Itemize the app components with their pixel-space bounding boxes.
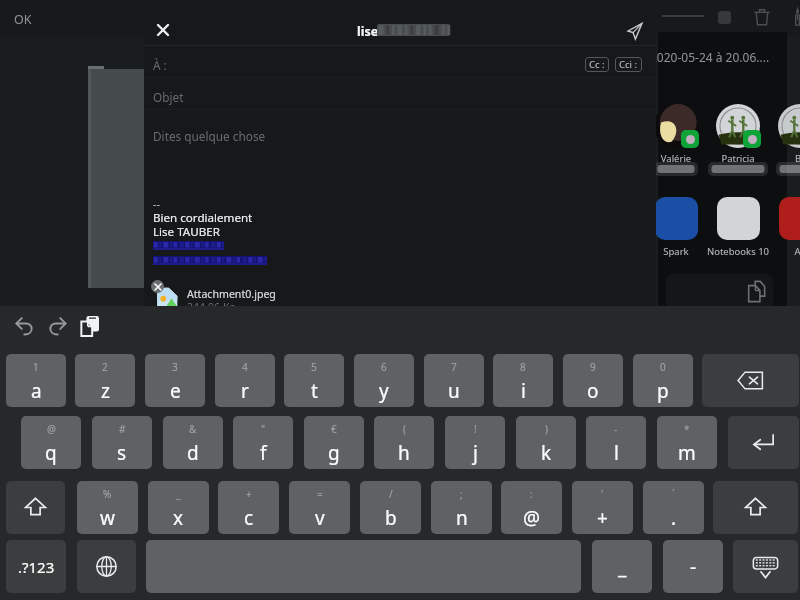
staticText: - [690, 554, 697, 580]
button[interactable]: " [233, 416, 293, 469]
button[interactable]: RETURN [728, 416, 799, 469]
button[interactable]: 8 [493, 354, 553, 407]
button[interactable]: 0 [633, 354, 693, 407]
button[interactable]: & [163, 416, 223, 469]
staticText: : [530, 487, 533, 501]
staticText: Cci : [619, 58, 638, 71]
button[interactable]: 3 [145, 354, 205, 407]
staticText: 2 [102, 360, 108, 374]
staticText: .?123 [18, 557, 55, 577]
button[interactable]: ( [374, 416, 434, 469]
staticText: v [315, 505, 325, 531]
staticText: d [187, 440, 199, 466]
staticText: s [117, 440, 127, 466]
staticText: 1 [33, 360, 39, 374]
button[interactable]: Undo [9, 310, 41, 342]
button[interactable]: _ [148, 481, 209, 534]
staticText: t [311, 378, 318, 404]
button[interactable]: @ [21, 416, 81, 469]
button[interactable]: ! [445, 416, 505, 469]
button[interactable]: - [586, 416, 646, 469]
button[interactable]: Attachment0.jpeg [149, 276, 339, 306]
button[interactable]: Copy [666, 274, 773, 306]
button[interactable]: 1 [6, 354, 66, 407]
button[interactable]: ' [572, 481, 633, 534]
staticText: b [385, 505, 397, 531]
button[interactable]: Objet [144, 78, 656, 109]
staticText: + [246, 487, 252, 501]
staticText: Br [770, 152, 800, 165]
staticText: e [170, 378, 181, 404]
staticText: 3 [172, 360, 178, 374]
button[interactable]: Cci : [619, 57, 638, 72]
staticText: - [614, 422, 618, 436]
button[interactable]: Redo [41, 310, 73, 342]
staticText: Dites quelque chose [153, 128, 266, 144]
button[interactable]: ) [516, 416, 576, 469]
button[interactable]: ´ [643, 481, 704, 534]
staticText: OK [14, 11, 32, 28]
button[interactable]: 7 [424, 354, 484, 407]
staticText: Attachment0.jpeg [187, 287, 276, 301]
button[interactable]: 9 [563, 354, 623, 407]
staticText: 2020-05-24 à 20.06.... [650, 49, 770, 65]
staticText: i [521, 378, 526, 404]
button[interactable]: / [360, 481, 421, 534]
button[interactable]: 4 [215, 354, 275, 407]
staticText: ´ [672, 487, 675, 501]
staticText: z [101, 378, 110, 404]
staticText: Lise TAUBER [153, 224, 220, 240]
staticText: c [244, 505, 254, 531]
staticText: ) [545, 422, 548, 436]
staticText: h [398, 440, 410, 466]
staticText: 8 [520, 360, 526, 374]
button[interactable]: # [92, 416, 152, 469]
staticText: / [389, 487, 393, 501]
staticText: -- [153, 197, 160, 211]
button[interactable]: = [289, 481, 350, 534]
staticText: q [45, 440, 57, 466]
staticText: . [671, 505, 677, 531]
button[interactable]: * [657, 416, 717, 469]
button[interactable]: Cc : [589, 57, 605, 72]
staticText: ; [460, 487, 463, 501]
button[interactable]: : [501, 481, 562, 534]
button[interactable]: DISMISS [733, 540, 798, 593]
staticText: Cc : [589, 58, 605, 71]
button[interactable]: Paste [74, 310, 106, 342]
staticText: j [473, 440, 478, 466]
staticText: % [103, 487, 112, 501]
staticText: k [541, 440, 552, 466]
staticText: lise [357, 23, 379, 40]
button[interactable]: 6 [354, 354, 414, 407]
button[interactable]: - [663, 540, 723, 593]
staticText: À : [153, 57, 167, 73]
staticText: 6 [381, 360, 387, 374]
button[interactable]: € [304, 416, 364, 469]
staticText: ( [403, 422, 406, 436]
button[interactable]: GLOBE [77, 540, 136, 593]
button[interactable]: ; [431, 481, 492, 534]
staticText: Objet [153, 89, 184, 105]
staticText: 244.96 Ko [187, 300, 236, 314]
staticText: y [379, 378, 389, 404]
staticText: u [448, 378, 460, 404]
button[interactable]: Close [146, 13, 180, 47]
button[interactable]: 2 [75, 354, 135, 407]
button[interactable]: BACKSPACE [702, 354, 799, 407]
button[interactable]: + [218, 481, 279, 534]
staticText: g [328, 440, 340, 466]
button[interactable]: % [77, 481, 138, 534]
button[interactable]: .?123 [6, 540, 66, 593]
staticText: Patricia [708, 152, 768, 165]
button[interactable]: SHIFT [713, 481, 798, 534]
staticText: @ [47, 422, 56, 436]
staticText: Valérie [646, 152, 706, 165]
button[interactable]: SHIFT [6, 481, 65, 534]
button[interactable]: À : [144, 46, 656, 77]
staticText: a [31, 378, 42, 404]
button[interactable]: 5 [284, 354, 344, 407]
button[interactable]: _ [592, 540, 652, 593]
button[interactable]: Send [617, 13, 653, 49]
